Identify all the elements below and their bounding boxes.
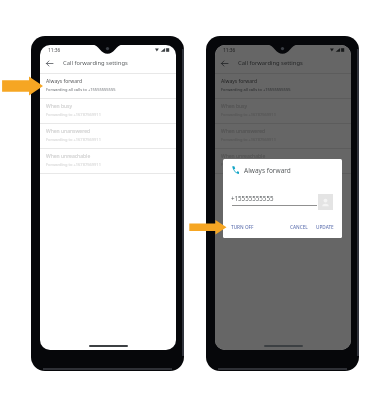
staticText: 11:36 xyxy=(223,47,236,54)
staticText: Call forwarding settings xyxy=(238,59,303,67)
staticText: 11:36 xyxy=(48,47,61,54)
button[interactable]: Back xyxy=(46,60,53,67)
button[interactable]: Pick contact xyxy=(318,194,333,210)
staticText: +15555555555 xyxy=(231,194,274,202)
staticText: Forwarding to +16787569911 xyxy=(221,137,276,142)
staticText: Call forwarding settings xyxy=(63,59,128,67)
staticText: CANCEL xyxy=(290,224,308,230)
staticText: When busy xyxy=(221,103,248,110)
button[interactable]: When unreachable xyxy=(40,148,176,173)
staticText: When busy xyxy=(46,103,73,110)
button[interactable]: CANCEL xyxy=(289,223,309,231)
staticText: When unanswered xyxy=(46,128,91,135)
button[interactable]: Always forward xyxy=(40,73,176,98)
staticText: When unreachable xyxy=(221,153,266,160)
staticText: Forwarding to +16787569911 xyxy=(46,112,101,117)
button[interactable]: When unanswered xyxy=(215,123,351,148)
button[interactable]: When unanswered xyxy=(40,123,176,148)
staticText: UPDATE xyxy=(316,224,334,230)
button[interactable]: Back xyxy=(221,60,228,67)
staticText: Forwarding all calls to +15555555555 xyxy=(46,87,116,92)
staticText: When unreachable xyxy=(46,153,91,160)
staticText: Always forward xyxy=(244,166,291,175)
staticText: Forwarding all calls to +15555555555 xyxy=(221,87,291,92)
staticText: Forwarding to +16787569911 xyxy=(46,137,101,142)
button[interactable]: When unreachable xyxy=(215,148,351,173)
button[interactable]: UPDATE xyxy=(315,223,335,231)
staticText: Forwarding to +16787569911 xyxy=(221,162,276,167)
button[interactable]: Always forward xyxy=(215,73,351,98)
staticText: Forwarding to +16787569911 xyxy=(221,112,276,117)
staticText: When unanswered xyxy=(221,128,266,135)
staticText: Always forward xyxy=(46,78,83,85)
staticText: Forwarding to +16787569911 xyxy=(46,162,101,167)
button[interactable]: TURN OFF xyxy=(230,223,255,231)
staticText: Always forward xyxy=(221,78,258,85)
button[interactable]: Back xyxy=(40,55,176,73)
staticText: TURN OFF xyxy=(231,224,254,230)
button[interactable]: Back xyxy=(215,55,351,73)
button[interactable]: When busy xyxy=(40,98,176,123)
